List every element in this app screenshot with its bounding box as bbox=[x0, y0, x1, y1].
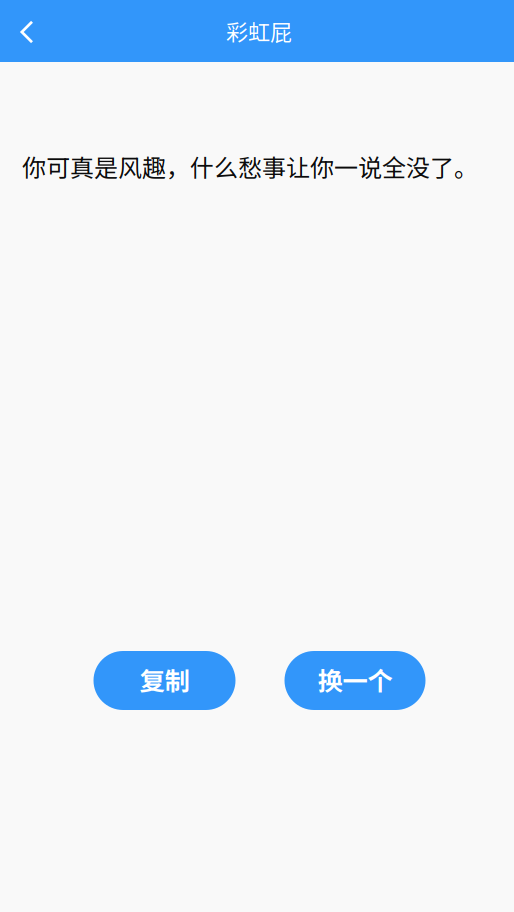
staticText: 彩虹屁 bbox=[226, 15, 292, 47]
button[interactable]: 换一个 bbox=[284, 651, 425, 710]
button[interactable]: 返回 bbox=[5, 9, 49, 53]
staticText: 换一个 bbox=[317, 661, 392, 698]
staticText: 复制 bbox=[139, 661, 189, 698]
button[interactable]: 复制 bbox=[93, 651, 235, 710]
staticText: 你可真是风趣，什么愁事让你一说全没了。 bbox=[22, 149, 478, 184]
